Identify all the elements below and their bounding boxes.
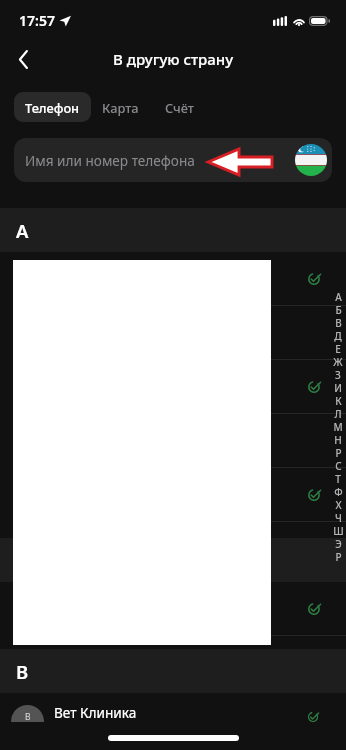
staticText: К [335,394,342,407]
staticText: Карта [102,99,139,116]
button[interactable]: Карта [91,92,150,122]
staticText: Ж [333,355,343,368]
button[interactable]: Телефон [14,92,91,122]
staticText: Имя или номер телефона [25,151,195,170]
staticText: С [335,459,342,472]
staticText: Р [335,550,342,563]
staticText: Е [335,342,341,355]
staticText: В [335,316,342,329]
staticText: А [335,290,342,303]
button[interactable]: Б [0,582,346,636]
staticText: З [335,368,341,381]
button[interactable]: Back [0,42,47,76]
staticText: Н [334,433,342,446]
staticText: Б [335,303,342,316]
button[interactable]: А [0,252,346,306]
staticText: 17:57 [19,11,55,30]
staticText: Э [335,537,342,550]
button[interactable]: Alphabet index [330,290,346,563]
staticText: Р [335,446,342,459]
button[interactable]: А [0,360,346,414]
staticText: Л [334,407,342,420]
button[interactable]: Счёт [154,92,205,122]
staticText: Ф [334,485,343,498]
staticText: Счёт [165,99,194,116]
button[interactable]: А [0,306,346,360]
button[interactable]: А [0,468,346,522]
staticText: Д [334,329,342,342]
staticText: И [334,381,342,394]
staticText: В [25,711,31,722]
button[interactable]: А [0,414,346,468]
staticText: А [16,218,29,243]
button[interactable]: Choose country [295,144,327,176]
staticText: Т [335,472,341,485]
staticText: М [333,420,343,433]
staticText: Ш [333,524,344,537]
button[interactable]: В [0,693,346,750]
staticText: Телефон [25,99,80,116]
button[interactable]: Имя или номер телефона [14,138,332,182]
staticText: Вет Клиника [54,703,137,722]
staticText: Ч [335,511,342,524]
staticText: Х [335,498,342,511]
staticText: В другую страну [113,49,234,69]
staticText: В [16,659,29,684]
